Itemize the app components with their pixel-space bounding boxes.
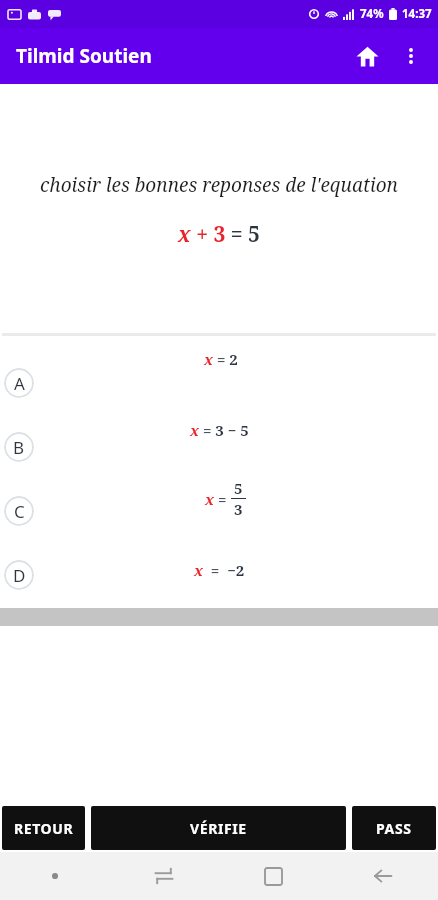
staticText: x = −2	[194, 560, 245, 580]
button[interactable]: B	[0, 404, 438, 468]
button[interactable]: A	[0, 340, 438, 404]
staticText: PASS	[376, 819, 412, 838]
button[interactable]: Assistant	[0, 852, 109, 900]
staticText: 5	[234, 478, 243, 498]
button[interactable]: Recent apps	[218, 852, 328, 900]
staticText: RETOUR	[14, 819, 74, 838]
staticText: x = 2	[204, 349, 238, 369]
button[interactable]: VÉRIFIE	[91, 806, 346, 850]
button[interactable]: PASS	[352, 806, 436, 850]
button[interactable]: More options	[390, 35, 432, 77]
staticText: x =	[205, 489, 231, 509]
staticText: C	[14, 500, 25, 523]
button[interactable]: C	[0, 468, 438, 532]
staticText: Tilmid Soutien	[16, 43, 152, 69]
button[interactable]: Switch apps	[109, 852, 218, 900]
staticText: A	[14, 372, 25, 395]
staticText: choisir les bonnes reponses de l'equatio…	[40, 172, 398, 198]
staticText: 14:37	[402, 6, 432, 22]
staticText: x = 3 − 5	[190, 420, 249, 440]
button[interactable]: RETOUR	[2, 806, 85, 850]
staticText: x + 3 = 5	[178, 220, 260, 249]
button[interactable]: Back	[328, 852, 438, 900]
staticText: D	[13, 564, 26, 587]
button[interactable]: choisir les bonnes reponses de l'equatio…	[2, 84, 436, 336]
staticText: B	[13, 436, 25, 459]
button[interactable]: Home	[344, 33, 390, 79]
staticText: 3	[234, 499, 243, 519]
staticText: 74%	[360, 6, 384, 22]
button[interactable]: D	[0, 532, 438, 596]
staticText: VÉRIFIE	[190, 819, 247, 838]
